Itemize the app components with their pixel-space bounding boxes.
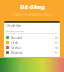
button[interactable]: Cà rốt [6,40,58,45]
staticText: Cà chua [11,46,21,50]
staticText: 1x [55,41,58,45]
staticText: Đã đăng [20,3,45,11]
staticText: Chi tiết đơn [6,24,22,28]
staticText: 1x [55,51,58,55]
staticText: Khoai tây [11,51,23,55]
staticText: Cà rốt [11,41,19,45]
staticText: Mã đơn #12345 [6,29,24,32]
button[interactable]: Cà chua [6,45,58,50]
staticText: Rau xanh [11,36,23,40]
staticText: Thông tin chi tiết đơn hàng [13,13,52,17]
button[interactable]: Rau xanh [6,35,58,40]
staticText: 3x [55,46,58,50]
button[interactable]: Khoai tây [6,50,58,55]
staticText: 2x [55,36,58,40]
